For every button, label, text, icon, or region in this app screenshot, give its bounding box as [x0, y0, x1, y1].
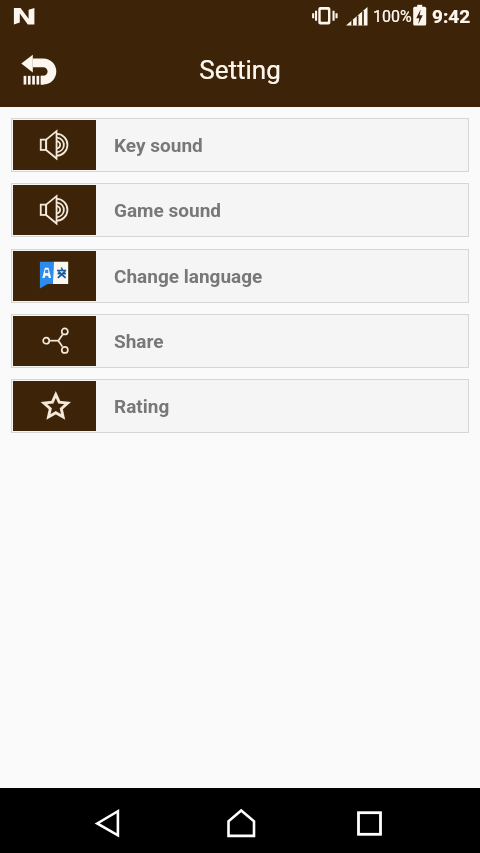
staticText: Key sound — [114, 134, 203, 156]
staticText: 100% — [373, 7, 412, 26]
button[interactable]: Home — [218, 801, 263, 846]
button[interactable]: Change language — [11, 249, 469, 303]
button[interactable]: Recents — [347, 801, 392, 846]
staticText: Change language — [114, 265, 263, 287]
staticText: 9:42 — [432, 5, 471, 27]
staticText: Rating — [114, 395, 170, 417]
staticText: Setting — [199, 55, 281, 85]
button[interactable]: Rating — [11, 379, 469, 433]
button[interactable]: Back — [85, 801, 130, 846]
button[interactable]: Share — [11, 314, 469, 368]
button[interactable]: Game sound — [11, 183, 469, 237]
button[interactable]: Key sound — [11, 118, 469, 172]
button[interactable]: Back — [16, 50, 60, 90]
staticText: Share — [114, 330, 164, 352]
staticText: Game sound — [114, 199, 222, 221]
